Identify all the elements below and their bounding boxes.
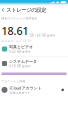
- staticText: 最終更新: 今日 12:30: [1, 40, 31, 43]
- staticText: 18.61: [1, 24, 28, 38]
- button[interactable]: iCloud アカウント: [0, 83, 68, 97]
- staticText: 端末のストレージ使用状況: [1, 17, 37, 20]
- staticText: アカウントと同期: [1, 80, 25, 83]
- staticText: システムデータ: [9, 59, 37, 64]
- staticText: 写真とビデオ: [9, 44, 33, 49]
- button[interactable]: 写真とビデオ: [0, 42, 68, 56]
- staticText: ストレージの設定: [6, 7, 46, 13]
- staticText: 4.18 GB 使用中: [9, 64, 31, 68]
- button[interactable]: 戻る: [0, 6, 5, 14]
- button[interactable]: システムデータ: [0, 56, 68, 70]
- staticText: iCloud アカウント: [9, 85, 41, 91]
- staticText: GB / 64 GB 使用中: [30, 34, 56, 37]
- staticText: 同期は有効です: [9, 91, 30, 94]
- staticText: 9.42 GB 使用中: [9, 50, 31, 54]
